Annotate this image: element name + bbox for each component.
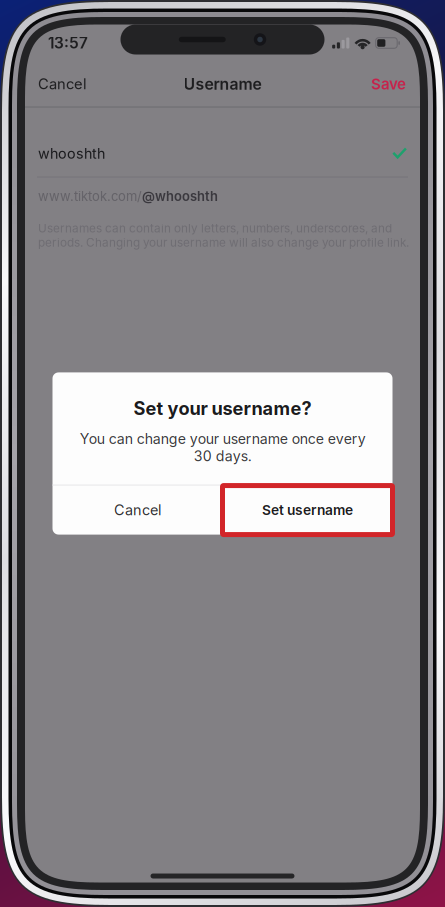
staticText: You can change your username once every … <box>79 430 365 465</box>
staticText: Username <box>183 74 261 93</box>
staticText: @whooshth <box>142 188 218 204</box>
staticText: www.tiktok.com/ <box>38 188 142 204</box>
staticText: Cancel <box>38 75 87 93</box>
staticText: Cancel <box>114 501 161 519</box>
staticText: Set your username? <box>133 397 311 419</box>
button[interactable]: Cancel <box>25 62 100 106</box>
button[interactable]: Save <box>357 62 420 106</box>
staticText: 13:57 <box>48 34 88 52</box>
staticText: Usernames can contain only letters, numb… <box>38 221 409 249</box>
staticText: whooshth <box>38 145 105 162</box>
button[interactable]: Cancel <box>52 486 222 535</box>
button[interactable]: Set username <box>222 486 392 535</box>
staticText: Set username <box>262 502 353 518</box>
staticText: Save <box>371 75 406 93</box>
